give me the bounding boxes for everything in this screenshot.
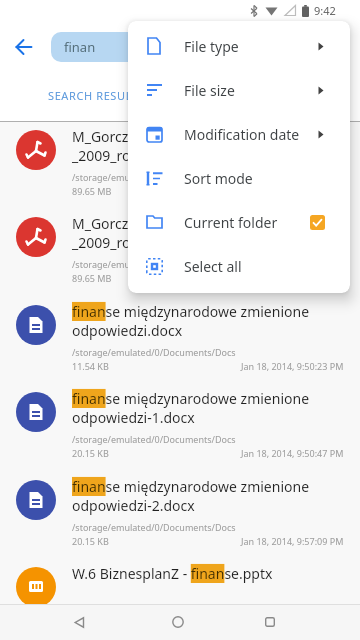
button[interactable]: finanse międzynarodowe zmienione	[0, 296, 360, 383]
button[interactable]: File size	[128, 68, 350, 112]
staticText: /storage/emulated/0/Documents	[72, 608, 212, 620]
button[interactable]: Sort mode	[128, 156, 350, 200]
button[interactable]: Current folder	[128, 200, 350, 244]
staticText: _2009_roz2.pdf	[72, 233, 171, 252]
staticText: Jan 18, 2014, 9:50:47 PM	[241, 447, 344, 459]
staticText: M_Gorczyca_Finanse	[72, 127, 207, 146]
button[interactable]: finanse międzynarodowe zmienione	[0, 471, 360, 558]
staticText: 71.32 KB	[72, 622, 109, 634]
button[interactable]: finanse międzynarodowe zmienione	[0, 383, 360, 470]
staticText: 11.54 KB	[72, 360, 109, 372]
button[interactable]	[154, 604, 202, 640]
button[interactable]: Select all	[128, 244, 350, 288]
button[interactable]	[246, 604, 294, 640]
staticText: /storage/emulated/0/Documents/Docs	[72, 346, 236, 358]
staticText: Select all	[184, 257, 242, 276]
button[interactable]: M_Gorczyca_Finanse	[0, 121, 360, 208]
staticText: File size	[184, 81, 235, 100]
staticText: finanse międzynarodowe zmienione	[72, 477, 310, 496]
button[interactable]: W.6 BiznesplanZ - finanse.pptx	[0, 558, 360, 640]
staticText: /storage/emulated/0/Pobrane	[72, 171, 199, 183]
staticText: Jan 18, 2014, 9:57:09 PM	[241, 535, 344, 547]
staticText: Current folder	[184, 213, 278, 232]
staticText: 9:42	[314, 3, 336, 18]
staticText: odpowiedzi-1.docx	[72, 408, 195, 427]
button[interactable]: M_Gorczyca_Finanse	[0, 208, 360, 295]
staticText: odpowiedzi.docx	[72, 321, 183, 340]
button[interactable]	[55, 604, 103, 640]
button[interactable]	[8, 31, 40, 63]
staticText: M_Gorczyca_Finanse	[72, 214, 207, 233]
staticText: finanse międzynarodowe zmienione	[72, 302, 310, 321]
staticText: File type	[184, 37, 239, 56]
button[interactable]: finan	[51, 32, 141, 62]
staticText: /storage/emulated/0/Pobrane	[72, 258, 199, 270]
staticText: /storage/emulated/0/Documents/Docs	[72, 521, 236, 533]
staticText: finanse międzynarodowe zmienione	[72, 389, 310, 408]
staticText: _2009_roz.pdf	[72, 146, 163, 165]
staticText: odpowiedzi-2.docx	[72, 496, 195, 515]
staticText: 89.65 MB	[72, 185, 112, 197]
staticText: /storage/emulated/0/Documents/Docs	[72, 433, 236, 445]
staticText: Sort mode	[184, 169, 253, 188]
staticText: 20.15 KB	[72, 535, 109, 547]
staticText: Jan 18, 2014, 9:50:23 PM	[241, 360, 344, 372]
staticText: SEARCH RESULTS	[48, 88, 146, 103]
button[interactable]: Modification date	[128, 112, 350, 156]
staticText: 89.65 MB	[72, 272, 112, 284]
staticText: Modification date	[184, 125, 300, 144]
staticText: W.6 BiznesplanZ - finanse.pptx	[72, 564, 273, 583]
staticText: 20.15 KB	[72, 447, 109, 459]
staticText: finan	[64, 38, 96, 56]
button[interactable]: File type	[128, 24, 350, 68]
